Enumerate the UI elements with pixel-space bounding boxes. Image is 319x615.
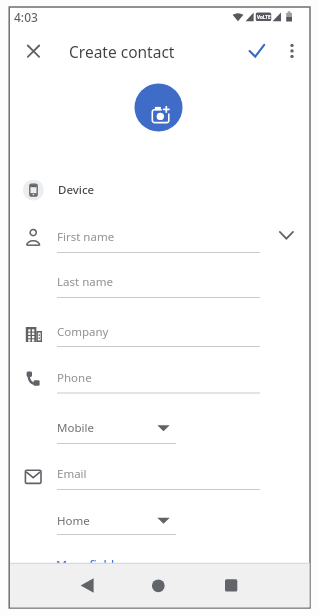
button[interactable]	[57, 461, 260, 491]
button[interactable]	[57, 269, 260, 299]
staticText: Mobile	[57, 420, 94, 436]
button[interactable]	[57, 318, 260, 348]
staticText: Home	[57, 513, 90, 529]
button[interactable]	[57, 415, 176, 445]
button[interactable]	[57, 508, 176, 536]
button[interactable]	[24, 41, 44, 61]
staticText: Company	[57, 324, 109, 340]
button[interactable]	[283, 40, 301, 62]
button[interactable]	[20, 175, 140, 205]
button[interactable]: More fields	[56, 557, 126, 564]
button[interactable]	[57, 364, 260, 394]
button[interactable]	[134, 570, 184, 600]
staticText: Last name	[57, 274, 113, 290]
staticText: First name	[57, 229, 115, 245]
button[interactable]	[57, 224, 260, 254]
button[interactable]	[135, 84, 183, 132]
staticText: Email	[57, 466, 87, 482]
staticText: Device	[58, 182, 95, 198]
staticText: Phone	[57, 370, 92, 386]
staticText: Create contact	[69, 41, 175, 62]
button[interactable]	[206, 570, 256, 600]
button[interactable]	[62, 570, 112, 600]
button[interactable]	[274, 226, 300, 246]
staticText: More fields	[56, 557, 121, 564]
staticText: 4:03	[14, 9, 38, 25]
button[interactable]	[245, 40, 269, 62]
staticText: VoLTE	[257, 14, 271, 20]
